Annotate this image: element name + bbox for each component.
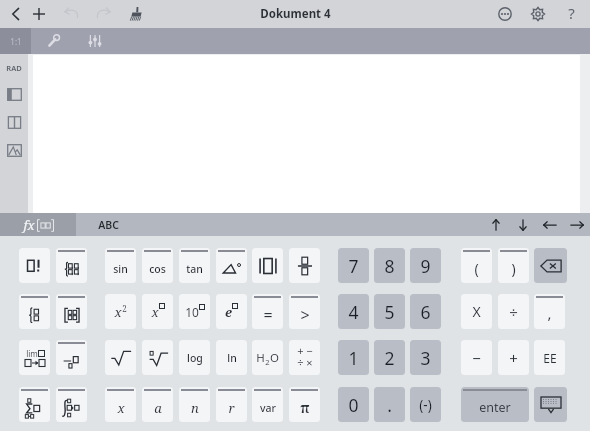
button[interactable]: sin (105, 248, 136, 283)
button[interactable]: Back (6, 4, 26, 24)
button[interactable]: 8 (374, 248, 405, 283)
button[interactable]: enter (461, 387, 529, 422)
button[interactable] (216, 248, 247, 283)
button[interactable] (252, 248, 283, 283)
button[interactable]: > (289, 294, 320, 329)
button[interactable] (534, 248, 567, 283)
button[interactable]: X (461, 294, 492, 329)
button[interactable]: Tools (31, 28, 77, 54)
staticText: EE (543, 350, 557, 366)
staticText: ABC (98, 218, 119, 232)
staticText: n (191, 399, 199, 417)
button[interactable]: , (534, 294, 565, 329)
staticText: , (547, 303, 552, 323)
staticText: Dokument 4 (260, 6, 331, 22)
staticText: 6 (420, 300, 431, 324)
button[interactable]: lim (19, 340, 50, 375)
staticText: + (509, 348, 518, 368)
button[interactable]: 3 (410, 340, 441, 375)
button[interactable] (142, 340, 173, 375)
button[interactable]: H (252, 340, 283, 375)
button[interactable]: − (461, 340, 492, 375)
button[interactable]: log (179, 340, 210, 375)
staticText: enter (479, 399, 511, 416)
button[interactable]: Document (0, 112, 28, 132)
button[interactable] (105, 340, 136, 375)
button[interactable]: + (498, 340, 529, 375)
button[interactable]: Undo (61, 4, 81, 24)
staticText: (-) (419, 396, 432, 414)
button[interactable]: 5 (374, 294, 405, 329)
button[interactable]: x (142, 294, 173, 329)
button[interactable]: Clean (126, 4, 146, 24)
staticText: x (117, 399, 125, 417)
button[interactable]: 4 (338, 294, 369, 329)
button[interactable]: 7 (338, 248, 369, 283)
button[interactable]: EE (534, 340, 565, 375)
staticText: ) (511, 259, 516, 278)
button[interactable]: ABC (76, 213, 141, 236)
staticText: ÷ (297, 355, 304, 370)
staticText: r (228, 399, 235, 417)
button[interactable]: (-) (410, 387, 441, 422)
button[interactable]: Graph (0, 140, 28, 160)
staticText: 8 (384, 254, 395, 278)
button[interactable] (19, 294, 50, 329)
button[interactable]: = (252, 294, 283, 329)
button[interactable] (19, 387, 50, 422)
staticText: H (256, 350, 265, 366)
staticText: 2 (265, 357, 270, 367)
button[interactable]: Settings sliders (77, 28, 113, 54)
button[interactable]: New (29, 4, 49, 24)
button[interactable]: π (289, 387, 320, 422)
staticText: var (260, 401, 276, 415)
button[interactable] (289, 248, 320, 283)
button[interactable] (19, 248, 50, 283)
button[interactable]: 1 (338, 340, 369, 375)
button[interactable] (534, 387, 567, 422)
button[interactable]: 2 (374, 340, 405, 375)
button[interactable]: var (252, 387, 283, 422)
button[interactable]: x (105, 294, 136, 329)
staticText: ln (227, 351, 237, 365)
button[interactable]: Settings (528, 4, 548, 24)
staticText: RAD (6, 63, 22, 73)
button[interactable]: x (105, 387, 136, 422)
button[interactable]: 9 (410, 248, 441, 283)
button[interactable]: n (179, 387, 210, 422)
button[interactable]: Help (561, 3, 581, 23)
button[interactable] (56, 294, 87, 329)
button[interactable]: 6 (410, 294, 441, 329)
button[interactable] (56, 340, 87, 375)
button[interactable]: + (289, 340, 320, 375)
button[interactable]: e (216, 294, 247, 329)
button[interactable]: Down (509, 213, 536, 236)
button[interactable]: ( (461, 248, 492, 283)
button[interactable]: 1:1 (0, 28, 31, 54)
button[interactable]: More (495, 4, 515, 24)
button[interactable]: 0 (338, 387, 369, 422)
button[interactable] (56, 387, 87, 422)
button[interactable]: ÷ (498, 294, 529, 329)
button[interactable]: a (142, 387, 173, 422)
button[interactable]: Left (536, 213, 563, 236)
staticText: 7 (348, 254, 359, 278)
button[interactable]: Page layout (0, 84, 28, 104)
button[interactable]: Right (563, 213, 590, 236)
staticText: + (297, 343, 304, 358)
button[interactable]: RAD (0, 61, 28, 75)
button[interactable] (56, 248, 87, 283)
button[interactable]: cos (142, 248, 173, 283)
staticText: π (300, 398, 310, 417)
button[interactable]: Redo (94, 4, 114, 24)
button[interactable]: ) (498, 248, 529, 283)
button[interactable]: tan (179, 248, 210, 283)
button[interactable]: r (216, 387, 247, 422)
button[interactable]: . (374, 387, 405, 422)
button[interactable]: 10 (179, 294, 210, 329)
staticText: 10 (185, 304, 199, 320)
button[interactable]: Up (482, 213, 509, 236)
button[interactable]: ln (216, 340, 247, 375)
button[interactable]: fx (0, 213, 76, 236)
staticText: 3 (420, 346, 431, 370)
